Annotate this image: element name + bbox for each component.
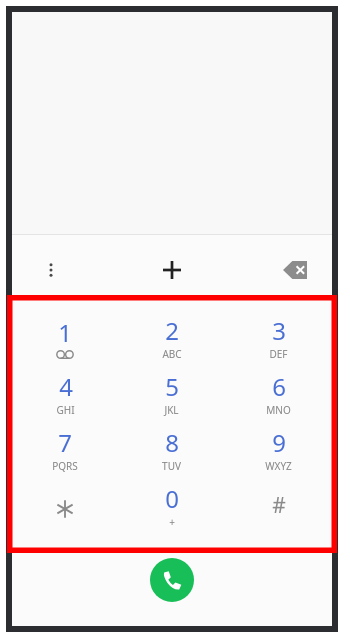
button[interactable]: 3: [225, 309, 332, 365]
button[interactable]: #: [225, 477, 332, 533]
button[interactable]: 7: [12, 421, 118, 477]
button[interactable]: 6: [225, 365, 332, 421]
staticText: #: [272, 491, 286, 520]
staticText: GHI: [56, 403, 75, 417]
staticText: JKL: [164, 403, 179, 417]
staticText: TUV: [162, 459, 181, 473]
staticText: 0: [165, 482, 179, 515]
staticText: DEF: [269, 347, 288, 361]
button[interactable]: [12, 477, 118, 533]
button[interactable]: Call: [150, 558, 194, 602]
button[interactable]: 2: [118, 309, 225, 365]
button[interactable]: Backspace: [272, 246, 320, 294]
staticText: PQRS: [52, 459, 78, 473]
button[interactable]: 8: [118, 421, 225, 477]
staticText: 4: [59, 370, 73, 403]
staticText: 2: [165, 314, 179, 347]
staticText: WXYZ: [265, 459, 292, 473]
button[interactable]: 1: [12, 309, 118, 365]
button[interactable]: 5: [118, 365, 225, 421]
staticText: +: [169, 515, 175, 529]
staticText: 1: [58, 316, 72, 349]
button[interactable]: 9: [225, 421, 332, 477]
button[interactable]: Add: [148, 246, 196, 294]
staticText: ABC: [162, 347, 182, 361]
staticText: MNO: [266, 403, 291, 417]
staticText: 3: [272, 314, 286, 347]
staticText: 9: [272, 426, 286, 459]
staticText: 8: [165, 426, 179, 459]
staticText: 5: [165, 370, 179, 403]
staticText: 6: [272, 370, 286, 403]
staticText: 7: [58, 426, 72, 459]
button[interactable]: More options: [27, 246, 75, 294]
button[interactable]: 0: [118, 477, 225, 533]
button[interactable]: 4: [12, 365, 118, 421]
